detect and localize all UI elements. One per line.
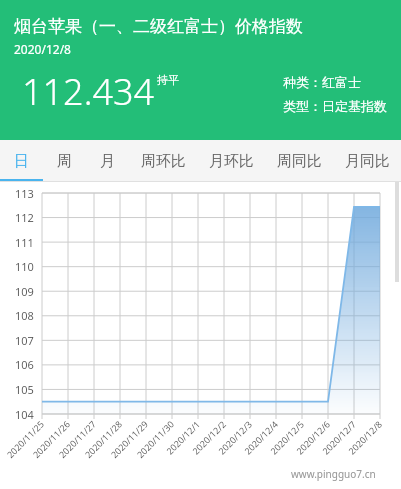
staticText: 112.434 bbox=[22, 67, 155, 116]
button[interactable]: 月同比 bbox=[333, 140, 401, 182]
button[interactable]: 周 bbox=[43, 140, 86, 182]
staticText: 持平 bbox=[157, 73, 179, 87]
staticText: 种类：红富士 bbox=[283, 74, 361, 90]
button[interactable]: 日 bbox=[0, 140, 43, 182]
button[interactable]: 月 bbox=[86, 140, 129, 182]
staticText: 月 bbox=[100, 152, 115, 171]
staticText: 日 bbox=[14, 152, 29, 171]
button[interactable]: 月环比 bbox=[197, 140, 265, 182]
staticText: 周环比 bbox=[141, 152, 186, 171]
staticText: 2020/12/8 bbox=[14, 41, 71, 57]
staticText: 周同比 bbox=[277, 152, 322, 171]
staticText: 周 bbox=[57, 152, 72, 171]
staticText: 类型：日定基指数 bbox=[283, 98, 387, 114]
staticText: 月环比 bbox=[209, 152, 254, 171]
button[interactable]: 周环比 bbox=[129, 140, 197, 182]
staticText: 烟台苹果（一、二级红富士）价格指数 bbox=[14, 16, 303, 37]
button[interactable]: 周同比 bbox=[265, 140, 333, 182]
staticText: 月同比 bbox=[345, 152, 390, 171]
